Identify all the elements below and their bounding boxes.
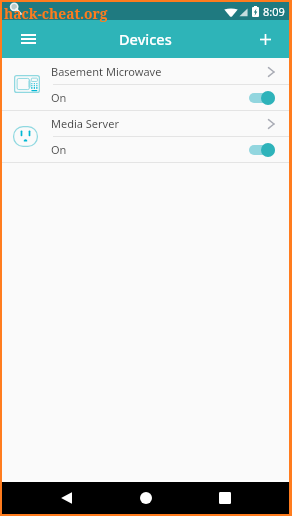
button[interactable]: Recents (209, 482, 241, 514)
button[interactable]: Toggle on (249, 90, 275, 106)
staticText: Media Server (51, 116, 265, 131)
staticText: On (51, 90, 249, 105)
staticText: hack-cheat.org (4, 4, 108, 22)
staticText: 8:09 (263, 4, 285, 19)
staticText: Basement Microwave (51, 64, 265, 79)
button[interactable]: Home (130, 482, 162, 514)
button[interactable]: On (2, 85, 289, 110)
button[interactable]: Back (50, 482, 82, 514)
button[interactable]: Toggle on (249, 142, 275, 158)
button[interactable]: Media Server (2, 111, 289, 136)
button[interactable]: Add device (246, 20, 284, 58)
button[interactable]: Basement Microwave (2, 59, 289, 84)
button[interactable]: On (2, 137, 289, 162)
staticText: Devices (119, 29, 172, 49)
button[interactable]: Open navigation menu (9, 20, 47, 58)
staticText: On (51, 142, 249, 157)
